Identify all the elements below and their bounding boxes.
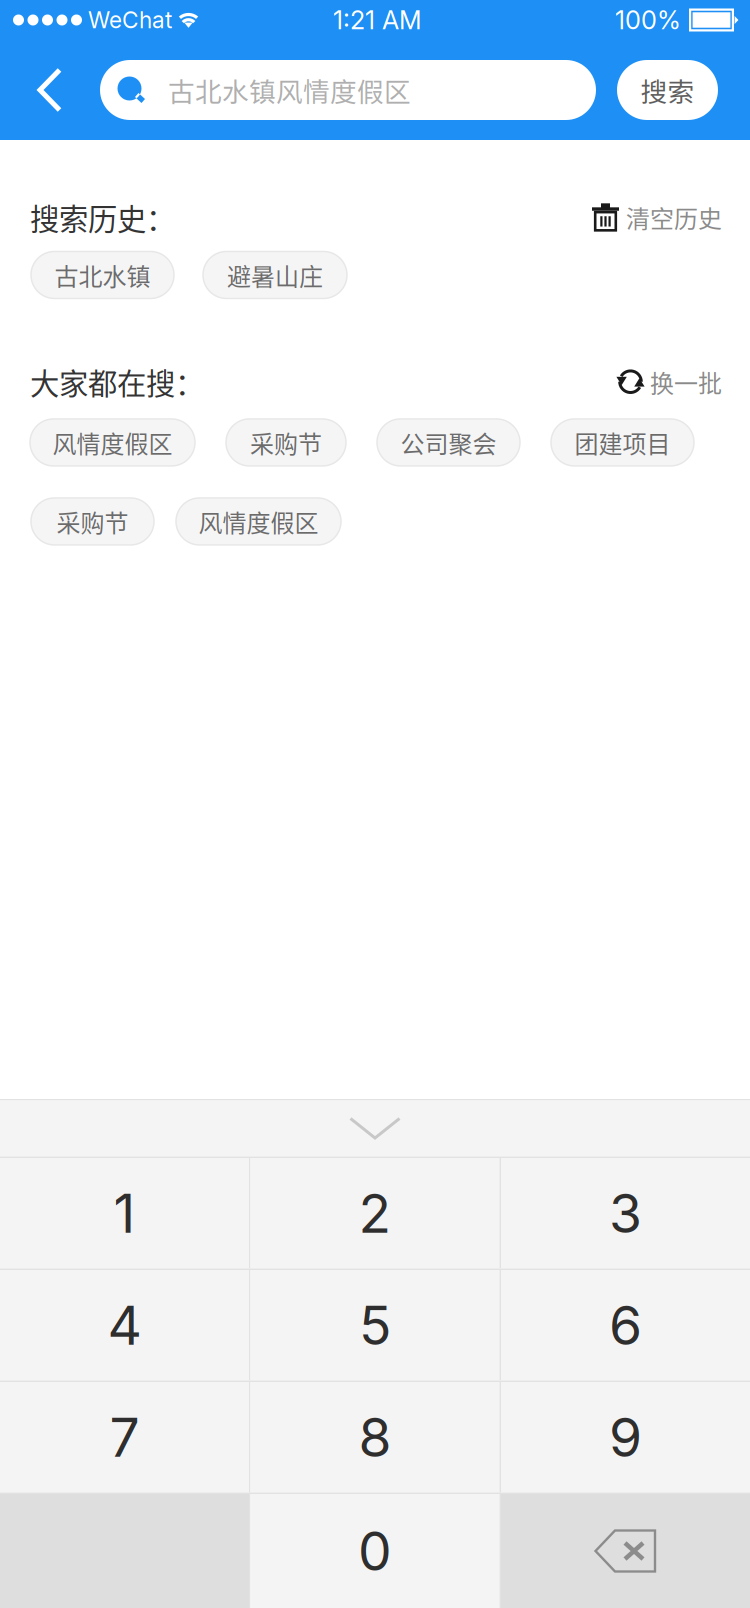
button[interactable]: 换一批 xyxy=(616,364,722,399)
button[interactable]: 风情度假区 xyxy=(176,498,341,545)
staticText: 8 xyxy=(358,1405,391,1469)
staticText: 0 xyxy=(358,1519,392,1583)
button[interactable]: 团建项目 xyxy=(551,419,694,466)
button[interactable]: 清空历史 xyxy=(592,200,722,235)
staticText: 4 xyxy=(107,1293,141,1357)
button[interactable]: 5 xyxy=(250,1270,499,1380)
button[interactable]: 1 xyxy=(0,1158,249,1268)
button[interactable]: 采购节 xyxy=(31,498,154,545)
staticText: 风情度假区 xyxy=(198,504,318,539)
button[interactable]: 风情度假区 xyxy=(30,419,195,466)
staticText: 6 xyxy=(609,1293,642,1357)
staticText: 1 xyxy=(113,1181,135,1245)
button[interactable]: Back xyxy=(0,40,100,140)
staticText: 3 xyxy=(609,1181,642,1245)
staticText: 古北水镇 xyxy=(54,258,150,292)
staticText: 1:21 AM xyxy=(333,5,422,35)
staticText: 避暑山庄 xyxy=(227,258,323,292)
button[interactable]: 7 xyxy=(0,1382,249,1492)
staticText: 清空历史 xyxy=(626,200,722,235)
button[interactable]: 2 xyxy=(250,1158,499,1268)
staticText: 搜索历史： xyxy=(30,196,175,238)
staticText: WeChat xyxy=(88,6,172,34)
staticText: 采购节 xyxy=(250,425,322,460)
button[interactable]: 采购节 xyxy=(226,419,346,466)
staticText: 采购节 xyxy=(56,504,128,539)
staticText: 100% xyxy=(615,5,681,35)
button[interactable]: 0 xyxy=(250,1494,499,1608)
staticText: 古北水镇风情度假区 xyxy=(168,71,411,109)
button[interactable]: 避暑山庄 xyxy=(203,251,347,298)
staticText: 团建项目 xyxy=(574,425,670,460)
staticText: 搜索 xyxy=(640,71,694,109)
button[interactable]: 3 xyxy=(501,1158,750,1268)
staticText: 9 xyxy=(609,1405,642,1469)
button[interactable]: 古北水镇 xyxy=(31,251,174,298)
staticText: 5 xyxy=(359,1293,391,1357)
staticText: 换一批 xyxy=(650,364,722,399)
staticText: 大家都在搜： xyxy=(30,360,204,403)
button[interactable]: 6 xyxy=(501,1270,750,1380)
button[interactable]: 9 xyxy=(501,1382,750,1492)
button[interactable]: 搜索 xyxy=(617,60,718,120)
staticText: 7 xyxy=(109,1405,139,1469)
staticText: 公司聚会 xyxy=(400,425,496,460)
button[interactable]: 4 xyxy=(0,1270,249,1380)
button[interactable]: 公司聚会 xyxy=(377,419,520,466)
staticText: 2 xyxy=(358,1181,391,1245)
staticText: 风情度假区 xyxy=(52,425,172,460)
button[interactable]: 8 xyxy=(250,1382,499,1492)
button[interactable]: Delete xyxy=(501,1494,750,1608)
